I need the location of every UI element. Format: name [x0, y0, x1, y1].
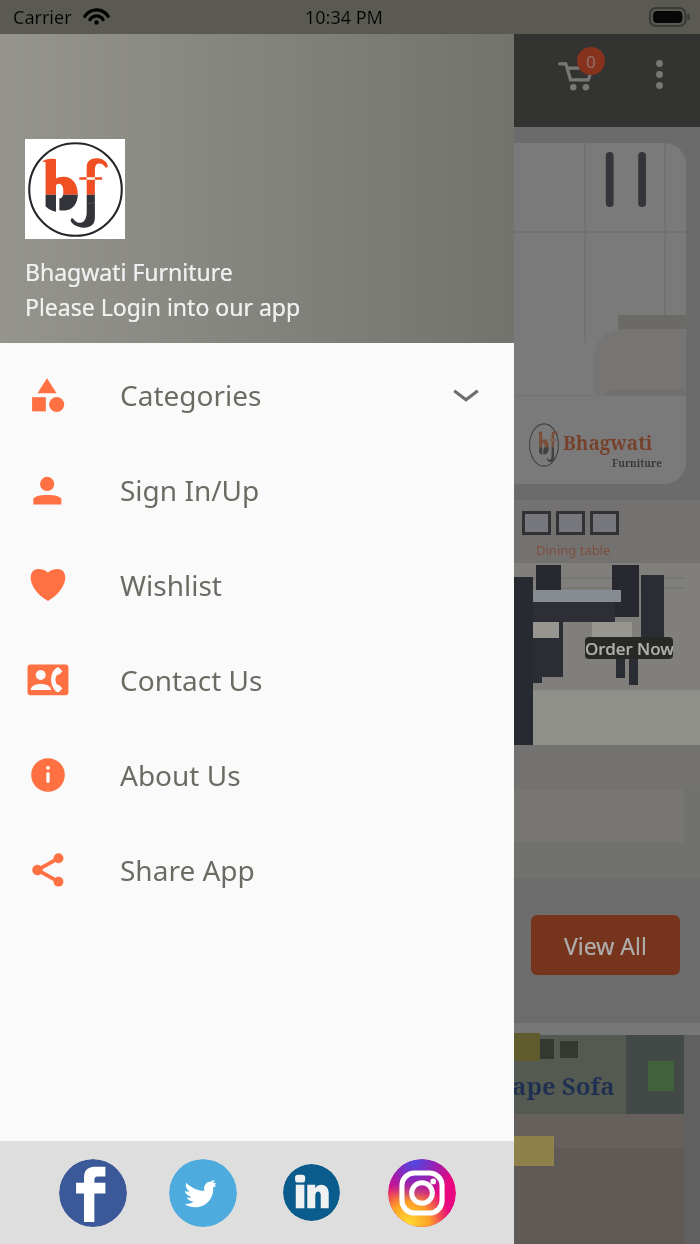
button[interactable]: LinkedIn	[283, 1164, 340, 1221]
button[interactable]: Order Now	[585, 637, 673, 659]
button[interactable]: Share App	[0, 822, 514, 917]
staticText: Furniture	[612, 456, 662, 470]
staticText: Contact Us	[120, 661, 263, 699]
button[interactable]: About Us	[0, 727, 514, 822]
button[interactable]: Cart	[549, 48, 607, 106]
staticText: Share App	[120, 851, 255, 889]
staticText: Bhagwati Furniture	[25, 256, 233, 287]
button[interactable]: Categories	[0, 347, 514, 442]
staticText: Bhagwati	[563, 430, 653, 456]
staticText: Carrier	[13, 5, 72, 30]
button[interactable]: Instagram	[388, 1159, 456, 1227]
staticText: hape Sofa	[496, 1069, 615, 1102]
staticText: 0	[586, 50, 596, 73]
button[interactable]: More options	[641, 56, 678, 93]
staticText: Order Now	[585, 637, 673, 659]
staticText: 10:34 PM	[305, 5, 383, 30]
staticText: Wishlist	[120, 566, 222, 604]
staticText: Please Login into our app	[25, 291, 301, 322]
staticText: View All	[564, 930, 647, 961]
button[interactable]: View All	[531, 915, 680, 975]
staticText: Sign In/Up	[120, 471, 260, 509]
button[interactable]: Sign In/Up	[0, 442, 514, 537]
button[interactable]: Twitter	[169, 1159, 237, 1227]
staticText: Categories	[120, 376, 262, 414]
button[interactable]: Facebook	[59, 1159, 127, 1227]
staticText: About Us	[120, 756, 241, 794]
staticText: Dining table	[536, 541, 611, 559]
button[interactable]: Contact Us	[0, 632, 514, 727]
button[interactable]: Wishlist	[0, 537, 514, 632]
